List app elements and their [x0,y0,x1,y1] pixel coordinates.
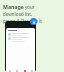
button[interactable] [8,37,33,40]
button[interactable]: Files [15,69,18,72]
staticText: Manage [3,3,24,10]
staticText: download list, [3,11,33,17]
button[interactable]: Settings [30,69,33,72]
staticText: pause & Resume it [3,18,43,24]
button[interactable] [8,41,33,42]
staticText: your [25,4,35,10]
button[interactable]: Downloads [23,69,26,72]
button[interactable]: Download [30,18,37,25]
button[interactable] [8,33,33,36]
button[interactable]: Home [8,69,11,72]
